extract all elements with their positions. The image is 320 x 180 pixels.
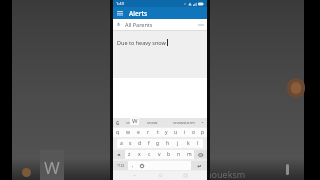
button[interactable]: s: [126, 139, 135, 148]
staticText: m: [187, 151, 192, 158]
staticText: s: [129, 140, 132, 147]
staticText: h: [166, 140, 170, 147]
staticText: b: [167, 151, 171, 158]
staticText: Due to heavy snow: [117, 39, 166, 46]
button[interactable]: t: [153, 128, 162, 137]
button[interactable]: Enter: [191, 161, 207, 170]
button[interactable]: p: [198, 128, 207, 137]
button[interactable]: l: [193, 139, 203, 148]
staticText: p: [201, 129, 205, 136]
button[interactable]: More options: [196, 20, 205, 29]
button[interactable]: m: [184, 150, 194, 159]
button[interactable]: h: [163, 139, 173, 148]
staticText: snow: [147, 120, 158, 126]
staticText: z: [128, 151, 131, 158]
staticText: All Parents: [125, 21, 153, 28]
staticText: j: [177, 140, 179, 147]
button[interactable]: a: [117, 139, 126, 148]
staticText: y: [165, 129, 168, 136]
button[interactable]: Open navigation menu: [115, 8, 125, 18]
button[interactable]: More suggestions: [200, 120, 205, 125]
staticText: snowstorm: [173, 120, 196, 126]
staticText: r: [147, 129, 150, 136]
staticText: t: [157, 129, 159, 136]
button[interactable]: ,: [128, 161, 137, 170]
staticText: g: [156, 140, 160, 147]
staticText: w: [126, 129, 130, 136]
button[interactable]: o: [189, 128, 198, 137]
button[interactable]: Back: [130, 171, 139, 180]
staticText: o: [192, 129, 196, 136]
button[interactable]: q: [113, 128, 123, 137]
button[interactable]: f: [144, 139, 153, 148]
button[interactable]: z: [125, 150, 134, 159]
staticText: i: [184, 129, 186, 136]
staticText: noueksm: [206, 168, 246, 180]
staticText: n: [177, 151, 181, 158]
button[interactable]: j: [173, 139, 183, 148]
button[interactable]: d: [135, 139, 144, 148]
staticText: k: [187, 140, 190, 147]
staticText: ?123: [117, 163, 125, 168]
button[interactable]: Due to heavy snow: [113, 31, 207, 78]
staticText: f: [148, 140, 150, 147]
button[interactable]: i: [180, 128, 189, 137]
button[interactable]: Home: [156, 171, 165, 180]
button[interactable]: c: [144, 150, 154, 159]
staticText: c: [148, 151, 151, 158]
staticText: l: [197, 140, 199, 147]
staticText: u: [174, 129, 178, 136]
button[interactable]: Google search: [115, 120, 120, 125]
button[interactable]: v: [154, 150, 164, 159]
button[interactable]: Symbols: [113, 161, 128, 170]
staticText: d: [138, 140, 142, 147]
staticText: W: [44, 156, 60, 179]
button[interactable]: e: [133, 128, 143, 137]
button[interactable]: r: [143, 128, 153, 137]
staticText: v: [158, 151, 161, 158]
button[interactable]: All Parents: [113, 19, 207, 30]
staticText: ,: [132, 162, 134, 169]
button[interactable]: b: [164, 150, 174, 159]
staticText: G: [116, 120, 120, 125]
button[interactable]: u: [171, 128, 180, 137]
button[interactable]: g: [153, 139, 163, 148]
staticText: W: [132, 117, 138, 125]
staticText: 1:49: [116, 1, 124, 6]
button[interactable]: n: [174, 150, 184, 159]
button[interactable]: w: [123, 128, 133, 137]
staticText: sno: [126, 120, 133, 125]
button[interactable]: y: [162, 128, 171, 137]
button[interactable]: x: [134, 150, 144, 159]
staticText: Alerts: [129, 9, 148, 18]
button[interactable]: k: [183, 139, 193, 148]
button[interactable]: Backspace: [194, 150, 207, 159]
button[interactable]: Shift: [113, 150, 125, 159]
staticText: x: [138, 151, 141, 158]
button[interactable]: Recent apps: [181, 171, 190, 180]
staticText: a: [120, 140, 123, 147]
staticText: e: [137, 129, 140, 136]
staticText: q: [116, 129, 120, 136]
button[interactable]: Emoji: [137, 161, 146, 170]
